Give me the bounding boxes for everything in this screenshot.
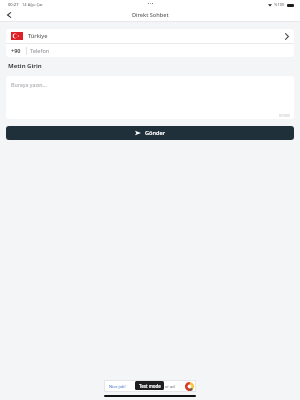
staticText: 14 Ağu Çar	[22, 2, 44, 8]
staticText: Test mode	[139, 383, 161, 389]
button[interactable]: Gönder	[6, 126, 294, 140]
button[interactable]: Türkiye	[6, 29, 294, 43]
staticText: Direkt Sohbet	[132, 11, 169, 19]
staticText: er ad	[165, 384, 175, 389]
button[interactable]: Back	[2, 8, 15, 21]
button[interactable]: Nice job!	[104, 380, 196, 392]
staticText: Nice job!	[109, 384, 126, 389]
staticText: %100	[274, 2, 285, 8]
staticText: Telefon	[30, 47, 50, 55]
staticText: 00:27	[8, 2, 19, 8]
button[interactable]: Buraya yazın...	[6, 76, 294, 119]
staticText: 0/1000	[279, 113, 290, 117]
staticText: Türkiye	[28, 32, 48, 40]
staticText: Metin Girin	[8, 62, 42, 70]
staticText: Gönder	[145, 129, 166, 137]
staticText: +90	[11, 47, 21, 54]
staticText: Buraya yazın...	[11, 81, 47, 88]
